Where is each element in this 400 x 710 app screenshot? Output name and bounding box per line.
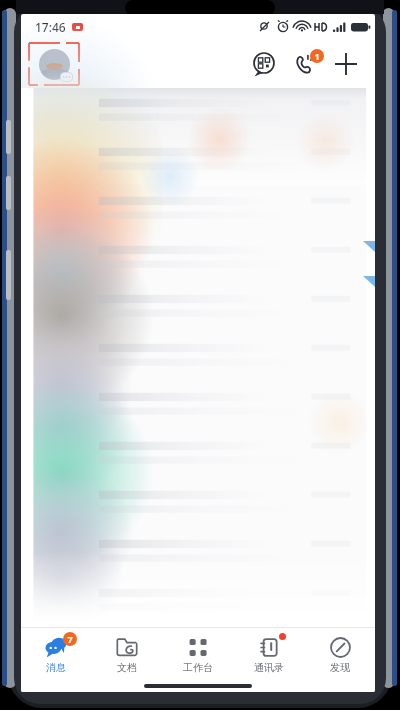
- button[interactable]: 发现: [304, 628, 375, 680]
- button[interactable]: 工作台: [162, 628, 233, 680]
- button[interactable]: Profile avatar: [29, 43, 79, 85]
- staticText: 通讯录: [254, 661, 284, 674]
- staticText: 1: [314, 50, 320, 62]
- button[interactable]: Scan QR code: [247, 47, 281, 81]
- button[interactable]: 文档: [91, 628, 162, 680]
- staticText: 发现: [330, 661, 350, 674]
- button[interactable]: 7: [21, 628, 91, 680]
- staticText: 工作台: [183, 661, 213, 674]
- button[interactable]: Add: [329, 47, 363, 81]
- staticText: 文档: [117, 661, 137, 674]
- staticText: 17:46: [35, 19, 66, 35]
- button[interactable]: Calls, 1 missed: [289, 47, 323, 81]
- button[interactable]: 通讯录: [233, 628, 304, 680]
- staticText: 7: [67, 633, 73, 645]
- staticText: 消息: [46, 661, 66, 674]
